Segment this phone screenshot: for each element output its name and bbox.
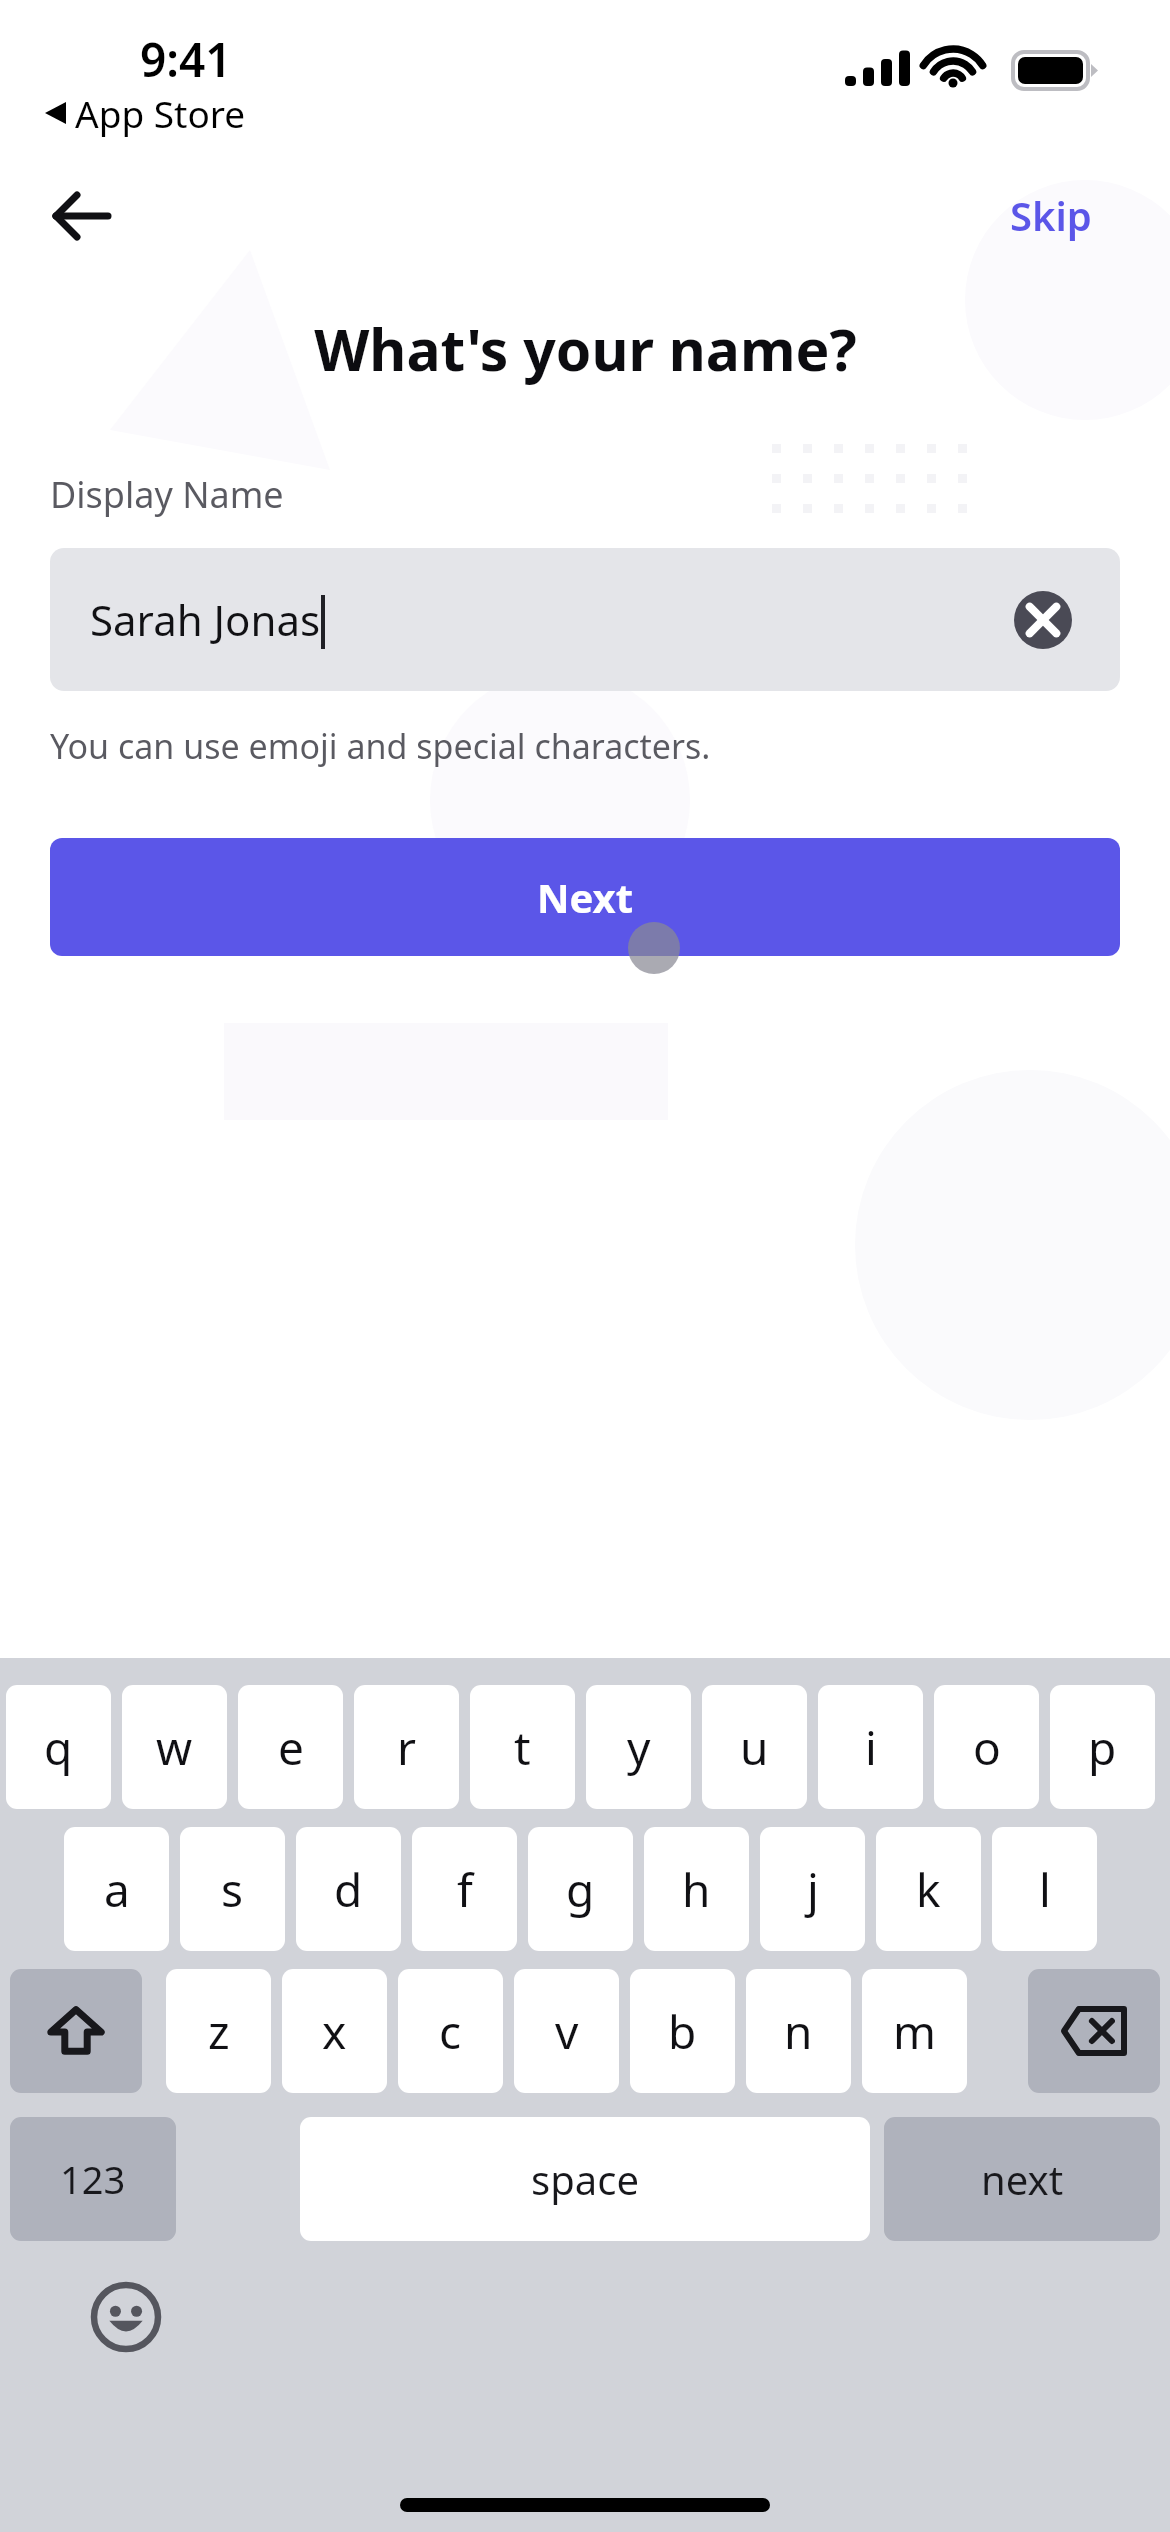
- button[interactable]: g: [528, 1827, 633, 1951]
- button[interactable]: e: [238, 1685, 343, 1809]
- staticText: v: [555, 2000, 579, 2063]
- staticText: i: [865, 1716, 877, 1779]
- button[interactable]: space: [300, 2117, 870, 2241]
- button[interactable]: n: [746, 1969, 851, 2093]
- button[interactable]: h: [644, 1827, 749, 1951]
- button[interactable]: next: [884, 2117, 1160, 2241]
- staticText: l: [1039, 1858, 1051, 1921]
- staticText: b: [668, 2000, 697, 2063]
- staticText: App Store: [75, 88, 246, 138]
- staticText: r: [397, 1716, 416, 1779]
- button[interactable]: w: [122, 1685, 227, 1809]
- button[interactable]: Emoji keyboard: [82, 2273, 170, 2361]
- button[interactable]: s: [180, 1827, 285, 1951]
- staticText: g: [566, 1858, 595, 1921]
- staticText: q: [44, 1716, 73, 1779]
- button[interactable]: d: [296, 1827, 401, 1951]
- staticText: f: [457, 1858, 473, 1921]
- button[interactable]: c: [398, 1969, 503, 2093]
- button[interactable]: Skip: [1010, 175, 1130, 255]
- staticText: s: [221, 1858, 244, 1921]
- staticText: h: [682, 1858, 711, 1921]
- staticText: Display Name: [50, 470, 284, 519]
- staticText: z: [208, 2000, 230, 2063]
- button[interactable]: f: [412, 1827, 517, 1951]
- staticText: Next: [537, 870, 634, 924]
- button[interactable]: y: [586, 1685, 691, 1809]
- staticText: m: [893, 2000, 937, 2063]
- button[interactable]: 123: [10, 2117, 176, 2241]
- staticText: You can use emoji and special characters…: [50, 723, 711, 769]
- staticText: p: [1088, 1716, 1117, 1779]
- staticText: j: [807, 1858, 819, 1921]
- button[interactable]: o: [934, 1685, 1039, 1809]
- staticText: d: [334, 1858, 363, 1921]
- button[interactable]: v: [514, 1969, 619, 2093]
- staticText: Sarah Jonas: [90, 591, 321, 648]
- button[interactable]: k: [876, 1827, 981, 1951]
- staticText: Skip: [1010, 188, 1092, 242]
- staticText: u: [740, 1716, 769, 1779]
- staticText: 123: [60, 2153, 126, 2205]
- staticText: What's your name?: [314, 310, 857, 388]
- button[interactable]: Clear text: [1008, 585, 1078, 655]
- staticText: a: [104, 1858, 130, 1921]
- staticText: space: [531, 2152, 639, 2206]
- staticText: o: [973, 1716, 1001, 1779]
- button[interactable]: p: [1050, 1685, 1155, 1809]
- button[interactable]: x: [282, 1969, 387, 2093]
- button[interactable]: i: [818, 1685, 923, 1809]
- button[interactable]: z: [166, 1969, 271, 2093]
- staticText: t: [514, 1716, 531, 1779]
- button[interactable]: Backspace: [1028, 1969, 1160, 2093]
- button[interactable]: Shift: [10, 1969, 142, 2093]
- button[interactable]: q: [6, 1685, 111, 1809]
- staticText: y: [627, 1716, 651, 1779]
- button[interactable]: j: [760, 1827, 865, 1951]
- button[interactable]: b: [630, 1969, 735, 2093]
- button[interactable]: r: [354, 1685, 459, 1809]
- staticText: c: [439, 2000, 462, 2063]
- button[interactable]: l: [992, 1827, 1097, 1951]
- staticText: next: [981, 2152, 1064, 2206]
- button[interactable]: Next: [50, 838, 1120, 956]
- staticText: x: [322, 2000, 347, 2063]
- staticText: e: [278, 1716, 304, 1779]
- button[interactable]: a: [64, 1827, 169, 1951]
- button[interactable]: u: [702, 1685, 807, 1809]
- staticText: k: [916, 1858, 941, 1921]
- button[interactable]: Sarah Jonas: [50, 548, 1120, 691]
- button[interactable]: m: [862, 1969, 967, 2093]
- staticText: n: [784, 2000, 813, 2063]
- button[interactable]: t: [470, 1685, 575, 1809]
- staticText: 9:41: [140, 28, 232, 91]
- staticText: w: [156, 1716, 193, 1779]
- button[interactable]: App Store: [44, 88, 246, 138]
- button[interactable]: Back: [44, 178, 120, 254]
